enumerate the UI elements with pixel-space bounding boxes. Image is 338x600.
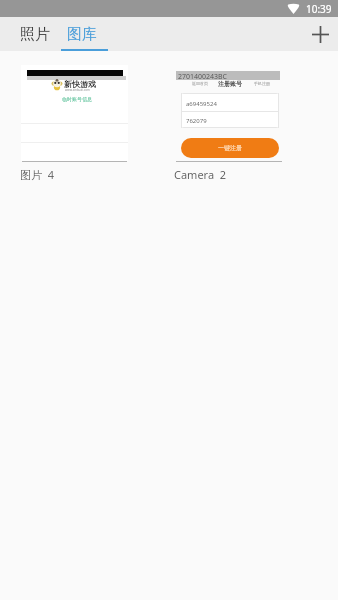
button[interactable]: 照片 bbox=[11, 17, 58, 51]
button[interactable]: 图库 bbox=[58, 17, 105, 51]
staticText: 临时账号信息 bbox=[62, 96, 92, 102]
staticText: Camera 2 bbox=[174, 167, 227, 182]
staticText: 一键注册 bbox=[218, 144, 242, 152]
staticText: 10:39 bbox=[306, 2, 332, 16]
button[interactable]: Add bbox=[303, 17, 337, 51]
staticText: 2701400243BC bbox=[178, 72, 228, 82]
staticText: www.xinkuai.com bbox=[65, 88, 90, 92]
staticText: 762079 bbox=[186, 117, 207, 125]
button[interactable]: 新快游戏 bbox=[21, 65, 128, 182]
staticText: a69459524 bbox=[186, 100, 217, 108]
staticText: 新快游戏 bbox=[64, 79, 96, 89]
staticText: 图库 bbox=[67, 25, 97, 44]
button[interactable]: 2701400243BC bbox=[175, 65, 283, 182]
staticText: 返回首页 bbox=[192, 81, 208, 86]
staticText: 图片 4 bbox=[20, 167, 55, 182]
staticText: 手机注册 bbox=[254, 81, 270, 86]
staticText: 注册账号 bbox=[218, 80, 242, 88]
staticText: 照片 bbox=[20, 25, 50, 44]
